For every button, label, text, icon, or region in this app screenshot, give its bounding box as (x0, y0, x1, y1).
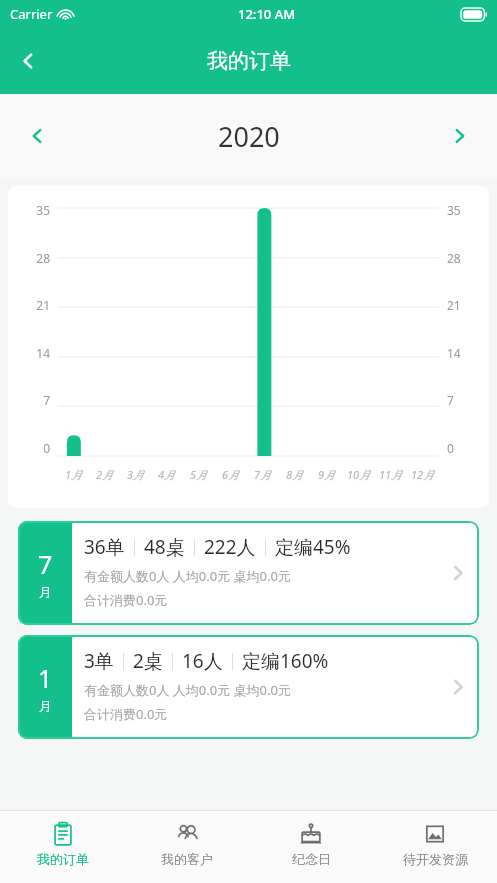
staticText: Carrier (10, 5, 53, 23)
button[interactable]: 我的订单 (0, 811, 125, 883)
staticText: 10月 (347, 467, 371, 482)
staticText: 合计消费0.0元 (84, 591, 168, 609)
staticText: 35 (447, 202, 471, 218)
staticText: 7月 (254, 467, 272, 482)
staticText: 0 (447, 440, 471, 456)
staticText: 28 (26, 250, 50, 266)
staticText: 月 (39, 698, 52, 714)
staticText: 1月 (65, 467, 83, 482)
staticText: 21 (447, 297, 471, 313)
staticText: 定编45% (275, 534, 351, 560)
staticText: 有金额人数0人 人均0.0元 桌均0.0元 (84, 681, 291, 699)
staticText: 有金额人数0人 人均0.0元 桌均0.0元 (84, 567, 291, 585)
staticText: 3月 (127, 467, 145, 482)
staticText: 合计消费0.0元 (84, 705, 168, 723)
button[interactable]: 7 (18, 521, 479, 625)
button[interactable]: 纪念日 (249, 811, 373, 883)
staticText: 4月 (158, 467, 176, 482)
staticText: 7 (38, 547, 53, 581)
staticText: 2020 (218, 118, 280, 155)
button[interactable]: Previous year (16, 115, 58, 157)
staticText: 1 (38, 661, 53, 695)
staticText: 月 (39, 584, 52, 600)
staticText: 14 (447, 345, 471, 361)
staticText: 2桌 (133, 648, 163, 674)
staticText: 我的客户 (161, 851, 213, 867)
button[interactable]: Next year (439, 115, 481, 157)
staticText: 11月 (379, 467, 403, 482)
staticText: 7 (26, 392, 50, 408)
staticText: 14 (26, 345, 50, 361)
staticText: 9月 (318, 467, 336, 482)
staticText: 我的订单 (37, 851, 89, 867)
staticText: 定编160% (242, 648, 329, 674)
staticText: 6月 (222, 467, 240, 482)
staticText: 28 (447, 250, 471, 266)
button[interactable]: Back (4, 37, 52, 85)
staticText: 7 (447, 392, 471, 408)
staticText: 222人 (204, 534, 256, 560)
staticText: 12:10 AM (238, 5, 296, 23)
staticText: 35 (26, 202, 50, 218)
staticText: 3单 (84, 648, 114, 674)
staticText: 21 (26, 297, 50, 313)
staticText: 16人 (182, 648, 223, 674)
staticText: 0 (26, 440, 50, 456)
button[interactable]: 我的客户 (125, 811, 249, 883)
staticText: 2月 (96, 467, 114, 482)
staticText: 5月 (190, 467, 208, 482)
button[interactable]: 1 (18, 635, 479, 739)
staticText: 我的订单 (207, 48, 291, 74)
staticText: 36单 (84, 534, 125, 560)
staticText: 48桌 (144, 534, 185, 560)
staticText: 纪念日 (292, 851, 331, 867)
staticText: 待开发资源 (403, 851, 468, 867)
staticText: 8月 (286, 467, 304, 482)
staticText: 12月 (411, 467, 435, 482)
button[interactable]: 待开发资源 (373, 811, 497, 883)
